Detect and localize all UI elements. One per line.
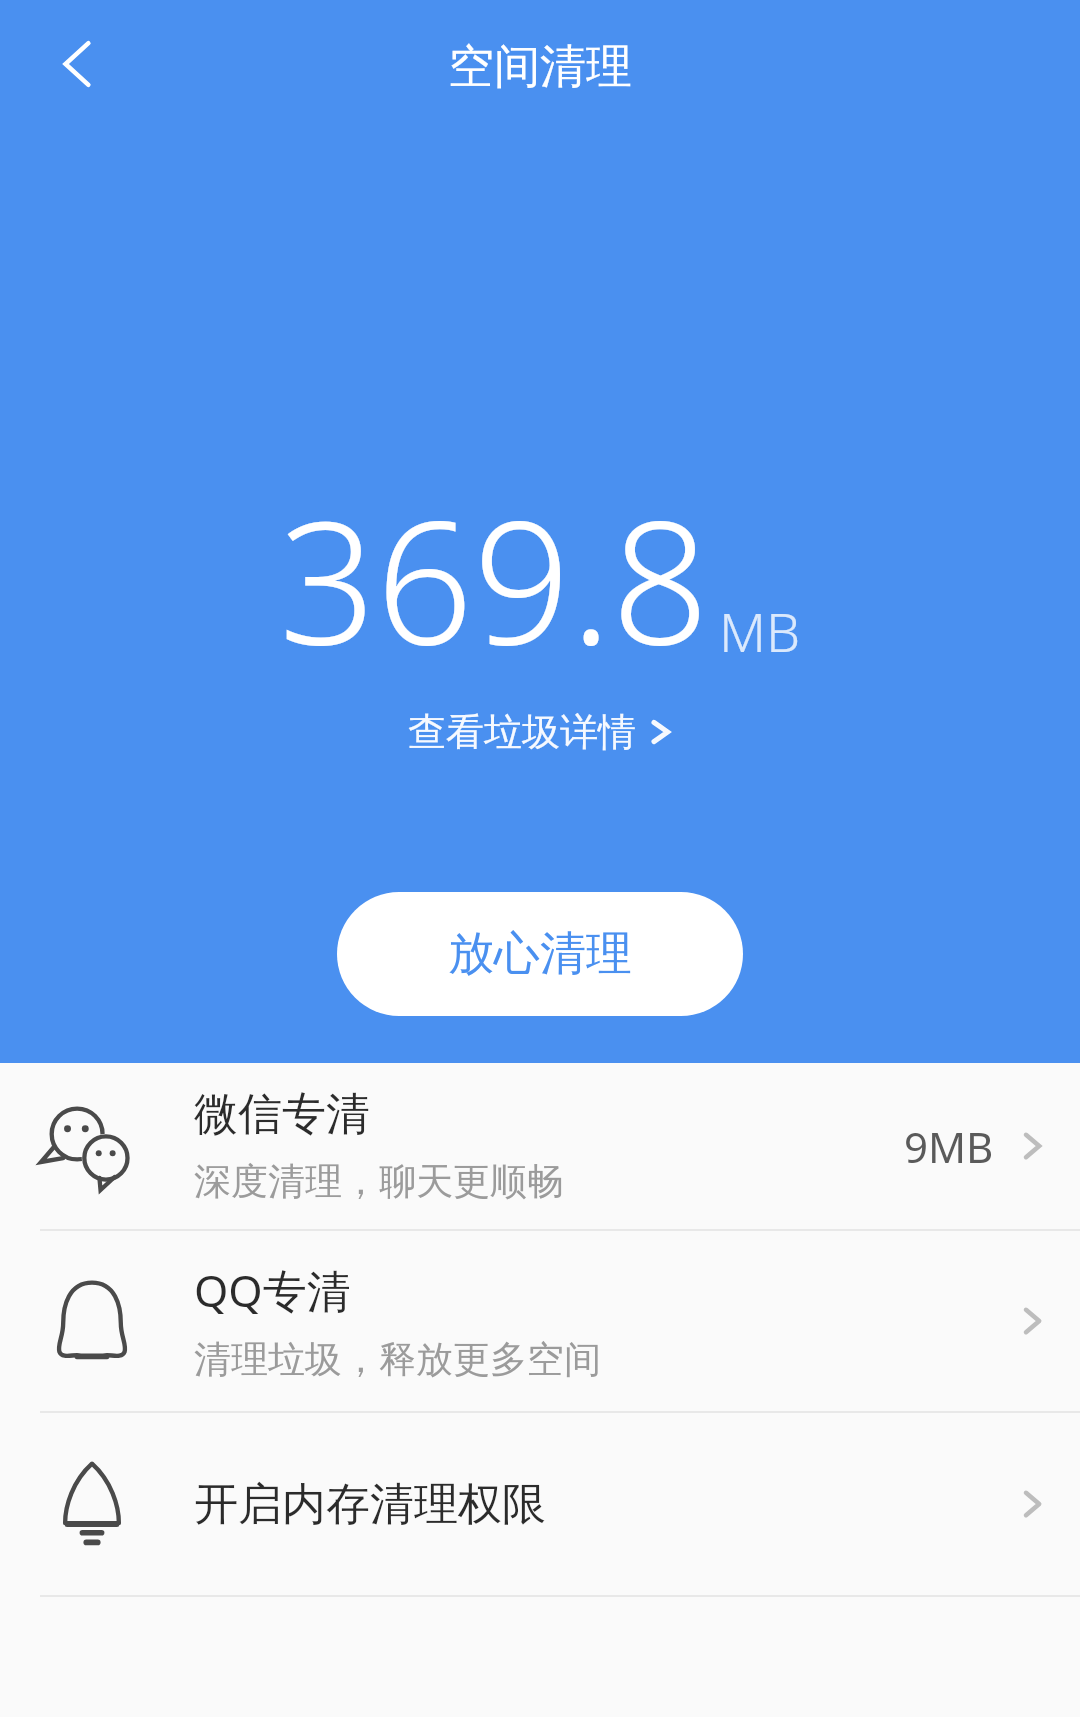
staticText: 9MB [904,1118,994,1175]
staticText: 深度清理，聊天更顺畅 [194,1158,564,1205]
button[interactable]: 查看垃圾详情 [394,700,686,764]
staticText: 空间清理 [448,38,632,96]
staticText: 放心清理 [448,925,632,983]
button[interactable]: 微信专清 [0,1063,1080,1229]
button[interactable]: Back [28,14,128,114]
staticText: 369.8 [279,462,709,694]
button[interactable]: 开启内存清理权限 [0,1413,1080,1595]
staticText: QQ专清 [194,1260,351,1320]
button[interactable]: 放心清理 [337,892,743,1016]
staticText: 清理垃圾，释放更多空间 [194,1336,601,1383]
staticText: 微信专清 [194,1087,370,1142]
staticText: MB [719,594,801,668]
staticText: 查看垃圾详情 [408,708,636,756]
button[interactable]: QQ专清 [0,1231,1080,1411]
staticText: 开启内存清理权限 [194,1477,546,1532]
